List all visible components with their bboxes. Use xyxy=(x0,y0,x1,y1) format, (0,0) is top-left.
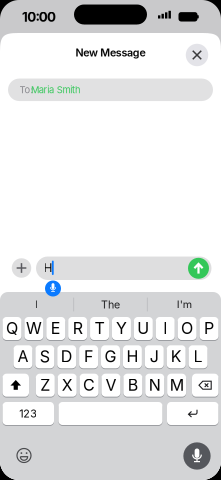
staticText: G xyxy=(104,347,116,366)
button[interactable]: 123 xyxy=(2,402,54,425)
staticText: L xyxy=(194,347,203,366)
button[interactable]: M xyxy=(167,374,186,397)
staticText: V xyxy=(105,375,116,394)
staticText: S xyxy=(40,347,50,366)
staticText: Q xyxy=(6,319,18,338)
button[interactable]: J xyxy=(145,345,164,368)
button[interactable]: T xyxy=(90,317,109,340)
button[interactable] xyxy=(183,442,211,470)
staticText: C xyxy=(83,375,95,394)
staticText: M xyxy=(170,375,184,394)
button[interactable] xyxy=(192,374,218,397)
button[interactable]: I xyxy=(2,293,72,315)
button[interactable]: D xyxy=(57,345,76,368)
button[interactable]: O xyxy=(178,317,197,340)
staticText: A xyxy=(17,347,28,366)
button[interactable]: E xyxy=(46,317,65,340)
staticText: To: xyxy=(19,84,33,95)
staticText: I xyxy=(35,298,38,311)
staticText: E xyxy=(51,319,61,338)
staticText: P xyxy=(204,319,214,338)
button[interactable]: B xyxy=(123,374,142,397)
button[interactable]: C xyxy=(80,374,99,397)
button[interactable]: A xyxy=(13,345,32,368)
staticText: F xyxy=(84,347,93,366)
button[interactable] xyxy=(58,402,162,425)
staticText: B xyxy=(128,375,138,394)
staticText: Z xyxy=(40,375,50,394)
button[interactable] xyxy=(12,258,31,278)
button[interactable]: Y xyxy=(112,317,131,340)
button[interactable]: P xyxy=(199,317,218,340)
staticText: N xyxy=(149,375,161,394)
button[interactable] xyxy=(16,447,32,463)
staticText: I xyxy=(163,319,167,338)
staticText: H xyxy=(43,261,52,275)
staticText: 123 xyxy=(19,407,37,420)
button[interactable]: H xyxy=(123,345,142,368)
button[interactable]: G xyxy=(101,345,120,368)
button[interactable]: S xyxy=(35,345,54,368)
staticText: J xyxy=(150,347,159,366)
staticText: H xyxy=(126,347,138,366)
staticText: K xyxy=(171,347,182,366)
staticText: New Message xyxy=(75,46,145,59)
button[interactable]: V xyxy=(101,374,120,397)
staticText: Y xyxy=(116,319,127,338)
button[interactable]: The xyxy=(75,293,145,315)
button[interactable]: L xyxy=(189,345,208,368)
button[interactable] xyxy=(2,374,29,397)
button[interactable]: U xyxy=(134,317,153,340)
staticText: I'm xyxy=(177,298,192,311)
button[interactable]: R xyxy=(68,317,87,340)
button[interactable]: X xyxy=(58,374,77,397)
button[interactable]: N xyxy=(145,374,164,397)
button[interactable]: H xyxy=(36,256,211,280)
staticText: The xyxy=(101,298,120,311)
button[interactable]: K xyxy=(167,345,186,368)
button[interactable] xyxy=(188,258,209,279)
button[interactable]: F xyxy=(79,345,98,368)
staticText: D xyxy=(61,347,73,366)
button[interactable]: I xyxy=(156,317,175,340)
button[interactable] xyxy=(167,402,218,425)
button[interactable]: Q xyxy=(2,317,21,340)
button[interactable]: W xyxy=(24,317,43,340)
staticText: X xyxy=(62,375,73,394)
staticText: W xyxy=(26,319,42,338)
button[interactable]: I'm xyxy=(149,293,219,315)
staticText: 10:00 xyxy=(22,9,56,25)
button[interactable] xyxy=(186,44,208,66)
staticText: O xyxy=(181,319,193,338)
button[interactable]: Z xyxy=(36,374,55,397)
staticText: R xyxy=(73,319,83,338)
button[interactable]: To: xyxy=(8,78,213,101)
staticText: U xyxy=(137,319,149,338)
staticText: Maria Smith xyxy=(31,84,81,95)
staticText: T xyxy=(95,319,105,338)
